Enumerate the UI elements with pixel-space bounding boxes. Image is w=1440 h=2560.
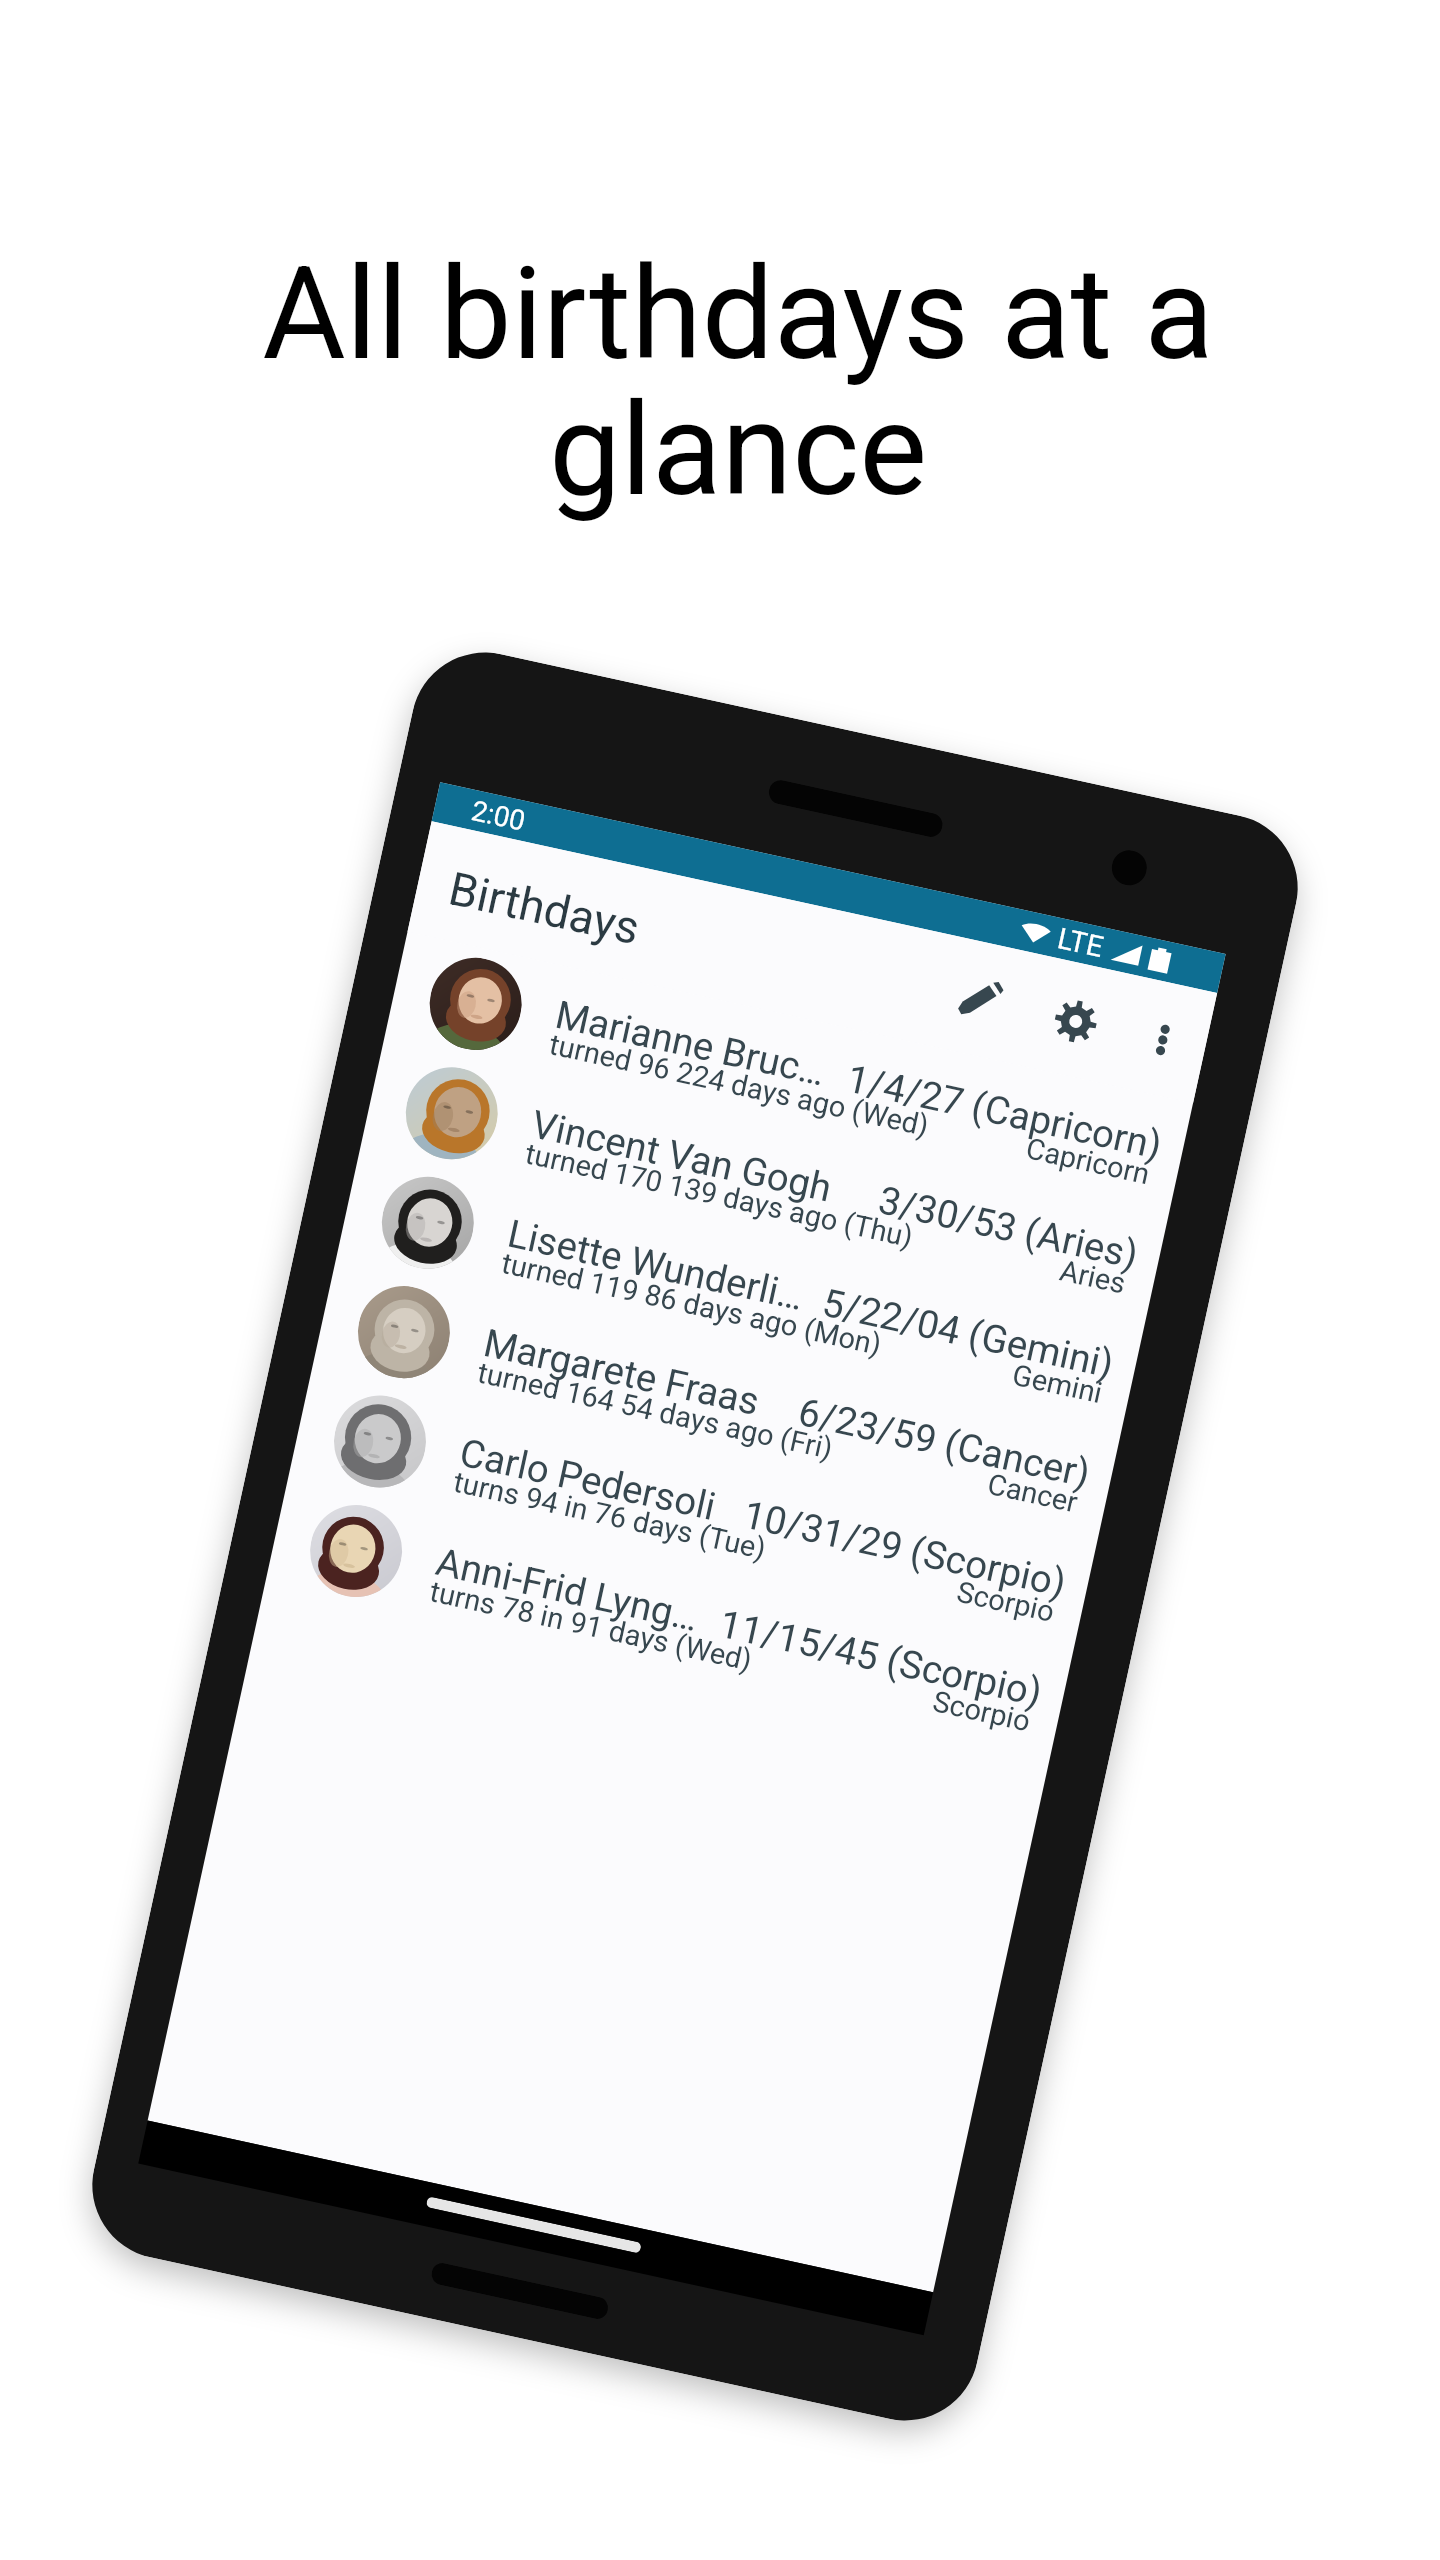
staticText: 1/4/27 (Capricorn) (843, 1055, 1166, 1168)
button[interactable]: Margarete Fraas (312, 1260, 1121, 1541)
staticText: Birthdays (444, 861, 645, 955)
staticText: turned 164 54 days ago (Fri) (474, 1355, 836, 1466)
staticText: 10/31/29 (Scorpio) (739, 1491, 1070, 1606)
button[interactable]: Lisette Wunderli… (336, 1150, 1145, 1432)
staticText: turned 119 86 days ago (Mon) (498, 1246, 885, 1362)
staticText: Margarete Fraas (480, 1320, 764, 1424)
staticText: turns 78 in 91 days (Wed) (427, 1574, 755, 1678)
staticText: Scorpio (930, 1684, 1034, 1738)
staticText: All birthdays at a glance (262, 239, 1214, 526)
button[interactable]: Carlo Pedersoli (288, 1369, 1097, 1650)
staticText: Anni-Frid Lyng… (432, 1539, 703, 1640)
staticText: Vincent Van Gogh (528, 1101, 836, 1211)
staticText: 6/23/59 (Cancer) (794, 1389, 1094, 1496)
staticText: Lisette Wunderli… (504, 1211, 808, 1319)
staticText: turns 94 in 76 days (Tue) (451, 1465, 769, 1566)
staticText: Gemini (1009, 1358, 1106, 1410)
staticText: 3/30/53 (Aries) (874, 1177, 1142, 1277)
staticText: Cancer (984, 1467, 1082, 1520)
button[interactable]: Anni-Frid Lyng… (264, 1479, 1073, 1760)
button[interactable]: More options (1111, 988, 1214, 1092)
button[interactable]: Vincent Van Gogh (360, 1041, 1169, 1322)
staticText: Marianne Bruc… (552, 992, 830, 1095)
staticText: 11/15/45 (Scorpio) (715, 1601, 1046, 1715)
staticText: Aries (1057, 1253, 1129, 1301)
staticText: LTE (1055, 921, 1107, 964)
staticText: Scorpio (954, 1575, 1058, 1629)
staticText: turned 96 224 days ago (Wed) (546, 1027, 933, 1143)
staticText: Carlo Pedersoli (456, 1429, 720, 1529)
staticText: 2:00 (468, 794, 528, 838)
staticText: Capricorn (1023, 1131, 1153, 1191)
staticText: turned 170 139 days ago (Thu) (522, 1136, 916, 1254)
button[interactable]: Settings (1024, 969, 1127, 1073)
staticText: 5/22/04 (Gemini) (818, 1279, 1118, 1387)
button[interactable]: Edit (929, 948, 1032, 1052)
button[interactable]: Marianne Bruc… (384, 932, 1193, 1213)
